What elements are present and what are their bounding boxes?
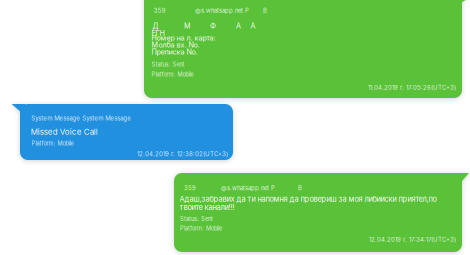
staticText: 359 — [154, 7, 166, 14]
staticText: Missed Voice Call — [31, 127, 98, 137]
button[interactable]: 359 — [144, 0, 469, 98]
staticText: 11.04.2019 г. 17:05:26(UTC+3) — [368, 84, 456, 91]
staticText: твоите канали!!! — [179, 203, 234, 212]
staticText: М — [184, 22, 191, 30]
staticText: Ф — [210, 22, 216, 30]
staticText: Status: Sent — [151, 61, 184, 68]
staticText: Status: Sent — [180, 216, 213, 222]
staticText: Platform: Mobile — [180, 225, 222, 232]
staticText: @s.whatsapp.net Р — [221, 184, 275, 192]
staticText: А — [250, 22, 255, 30]
staticText: Преписка No. — [151, 48, 197, 56]
button[interactable]: System Message System Message — [11, 104, 233, 160]
staticText: А — [236, 22, 241, 30]
staticText: Д — [152, 22, 158, 30]
staticText: System Message System Message — [31, 115, 131, 122]
staticText: @s.whatsapp.net Р — [195, 7, 249, 14]
staticText: В — [298, 184, 302, 192]
staticText: Номер на л. карта: — [151, 34, 215, 42]
staticText: 12.04.2019 г. 17:34:17(UTC+3) — [369, 236, 456, 243]
staticText: 12.04.2019 г. 12:38:02(UTC+3) — [137, 150, 228, 158]
staticText: 359 — [184, 184, 196, 192]
staticText: Молба вх. No. — [151, 41, 199, 49]
button[interactable]: 359 — [174, 173, 469, 252]
staticText: Platform: Mobile — [31, 140, 73, 147]
staticText: ЕГН — [151, 29, 164, 38]
staticText: В — [263, 7, 267, 14]
staticText: Адаш,забравих да ти напомня да провериш … — [179, 194, 436, 203]
staticText: Platform: Mobile — [151, 71, 193, 78]
